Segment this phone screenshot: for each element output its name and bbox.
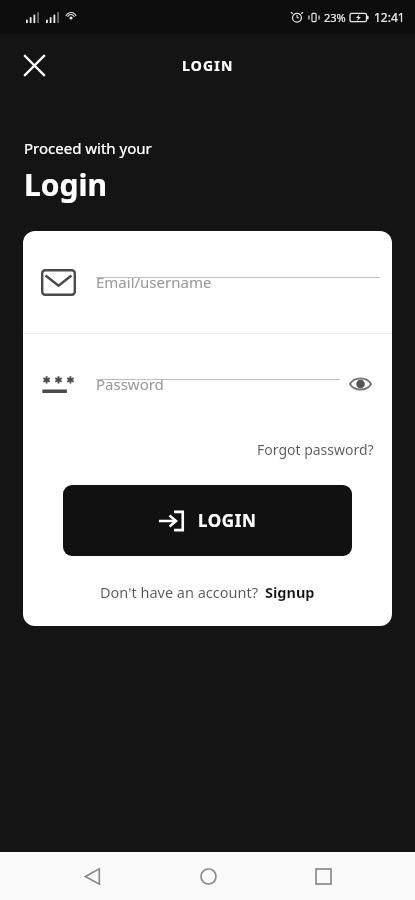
button[interactable]: Show password bbox=[340, 364, 380, 404]
button[interactable]: Password bbox=[23, 334, 392, 434]
staticText: LOGIN bbox=[198, 509, 257, 532]
staticText: Don't have an account? bbox=[100, 582, 258, 602]
staticText: Password bbox=[96, 374, 164, 394]
staticText: Signup bbox=[265, 582, 315, 602]
staticText: LOGIN bbox=[182, 56, 234, 75]
button[interactable]: Forgot password? bbox=[251, 434, 380, 465]
staticText: Proceed with your bbox=[24, 138, 152, 158]
staticText: Forgot password? bbox=[257, 440, 374, 459]
button[interactable]: Recents bbox=[299, 852, 347, 900]
staticText: 23% bbox=[324, 10, 346, 25]
button[interactable]: Home bbox=[184, 852, 232, 900]
button[interactable]: Close bbox=[12, 43, 56, 87]
staticText: Email/username bbox=[96, 272, 212, 292]
button[interactable]: LOGIN bbox=[63, 485, 352, 556]
button[interactable]: Email/username bbox=[23, 231, 392, 333]
staticText: 12:41 bbox=[374, 9, 405, 25]
button[interactable]: Don't have an account? bbox=[23, 578, 392, 606]
staticText: Login bbox=[24, 164, 107, 205]
button[interactable]: Back bbox=[68, 852, 116, 900]
